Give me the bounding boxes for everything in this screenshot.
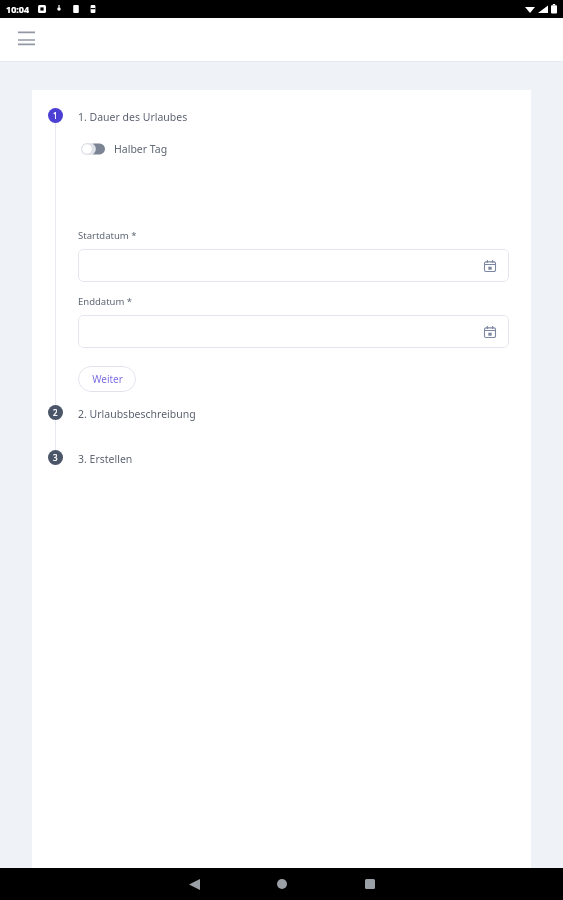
staticText: Startdatum * xyxy=(78,229,137,242)
staticText: Halber Tag xyxy=(114,142,168,156)
button[interactable]: Datum auswählen xyxy=(78,249,509,282)
button[interactable]: 3 xyxy=(32,450,531,466)
staticText: 1. Dauer des Urlaubes xyxy=(78,110,188,124)
button[interactable]: 2 xyxy=(32,405,531,450)
staticText: Enddatum * xyxy=(78,295,133,308)
staticText: 1 xyxy=(53,110,58,121)
button[interactable]: Menu xyxy=(10,24,42,56)
button[interactable]: Datum auswählen xyxy=(78,315,509,348)
other: Datum auswählen xyxy=(480,256,500,276)
staticText: 3 xyxy=(53,452,58,463)
button[interactable]: Home xyxy=(260,868,304,900)
staticText: 10:04 xyxy=(6,3,30,15)
button[interactable]: Back xyxy=(172,868,216,900)
other: Datum auswählen xyxy=(480,322,500,342)
button[interactable]: Halber Tag xyxy=(81,140,168,158)
button[interactable]: Weiter xyxy=(78,366,136,392)
staticText: Weiter xyxy=(92,372,123,386)
button[interactable]: Recents xyxy=(348,868,392,900)
staticText: 2 xyxy=(53,407,58,418)
staticText: 3. Erstellen xyxy=(78,452,133,466)
staticText: 2. Urlaubsbeschreibung xyxy=(78,407,196,421)
